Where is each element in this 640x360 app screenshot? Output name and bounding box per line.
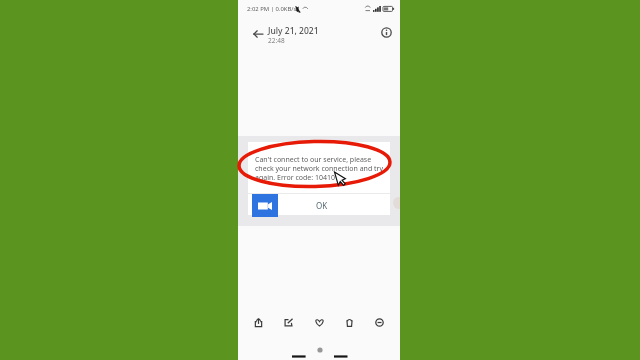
staticText: July 21, 2021 <box>268 25 319 37</box>
button[interactable]: Back <box>247 23 268 44</box>
button[interactable]: Edit <box>277 310 299 335</box>
button[interactable]: Delete <box>338 310 360 335</box>
button[interactable]: Info <box>375 21 397 43</box>
staticText: OK <box>316 200 328 211</box>
button[interactable]: Favorite <box>308 310 330 335</box>
staticText: 2:02 PM | 0.0KB/s <box>247 5 297 13</box>
staticText: Can't connect to our service, please che… <box>255 155 388 182</box>
button[interactable]: More options <box>368 310 390 335</box>
staticText: 22:48 <box>268 36 285 45</box>
button[interactable]: Share <box>247 310 269 335</box>
button[interactable]: OK <box>293 194 350 216</box>
button[interactable]: Video call <box>252 194 278 217</box>
